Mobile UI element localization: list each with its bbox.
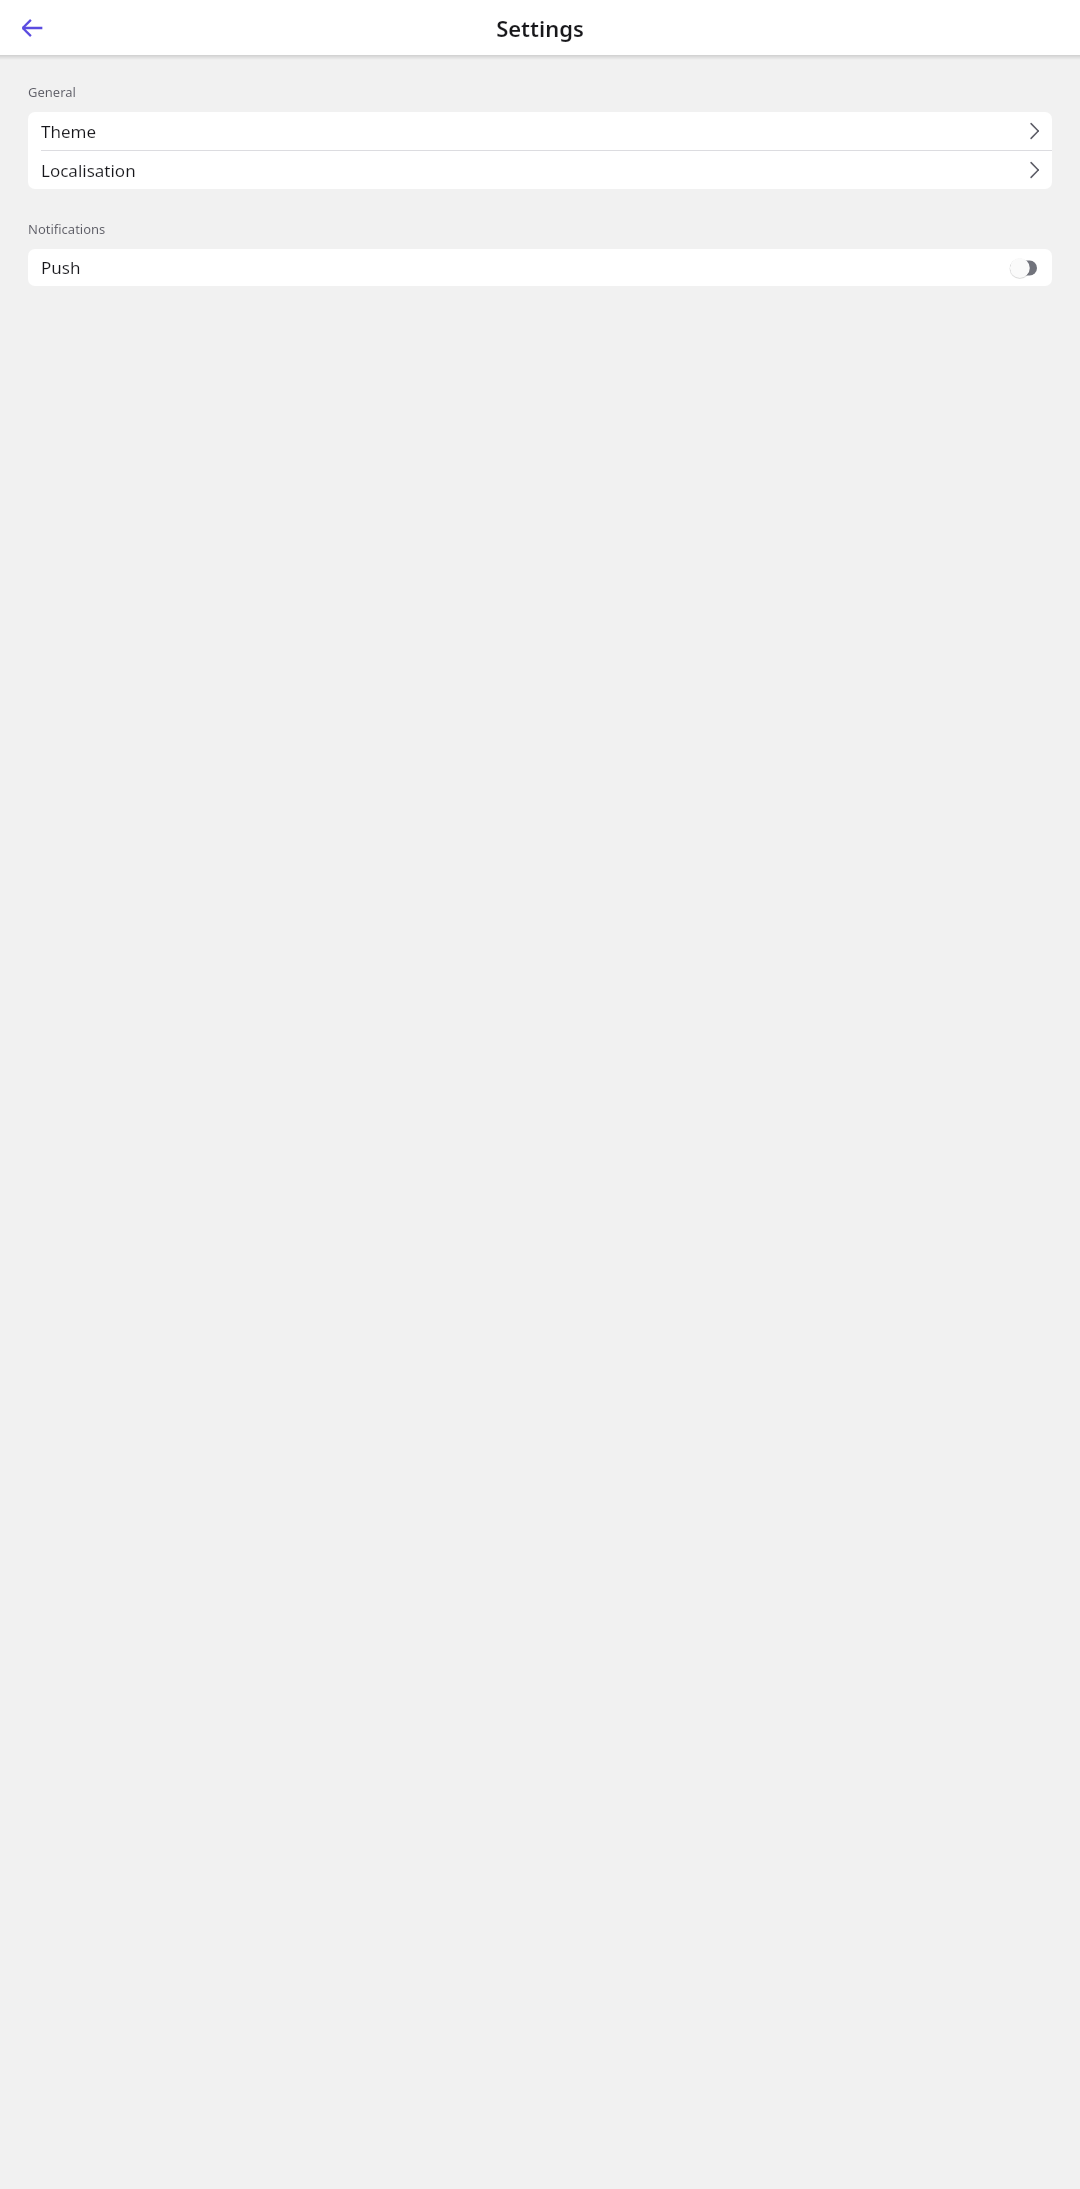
button[interactable]: Back bbox=[8, 4, 56, 52]
staticText: Settings bbox=[496, 13, 584, 43]
staticText: Theme bbox=[41, 120, 97, 143]
button[interactable]: Push bbox=[28, 249, 1052, 286]
staticText: Localisation bbox=[41, 159, 136, 182]
button[interactable]: Localisation bbox=[28, 151, 1052, 189]
staticText: Push bbox=[41, 256, 81, 279]
button[interactable]: Push notifications toggle bbox=[1010, 258, 1037, 278]
staticText: Notifications bbox=[28, 220, 106, 238]
staticText: General bbox=[28, 83, 76, 101]
button[interactable]: Theme bbox=[28, 112, 1052, 150]
